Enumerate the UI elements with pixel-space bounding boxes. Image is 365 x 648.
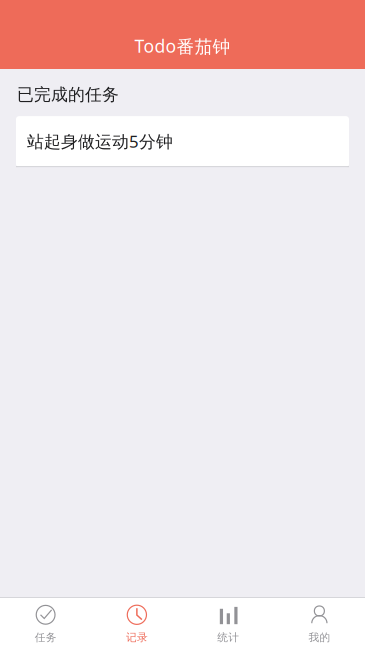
button[interactable]: 统计	[182, 597, 274, 648]
staticText: 站起身做运动5分钟	[27, 130, 173, 153]
staticText: Todo番茄钟	[134, 34, 230, 58]
staticText: 统计	[217, 631, 239, 644]
button[interactable]: 站起身做运动5分钟	[16, 116, 349, 167]
staticText: 已完成的任务	[17, 84, 119, 105]
button[interactable]: 任务	[0, 597, 91, 648]
button[interactable]: 我的	[274, 597, 365, 648]
staticText: 我的	[308, 631, 330, 644]
staticText: 记录	[126, 631, 148, 644]
staticText: 任务	[35, 631, 57, 644]
button[interactable]: 记录	[91, 597, 182, 648]
